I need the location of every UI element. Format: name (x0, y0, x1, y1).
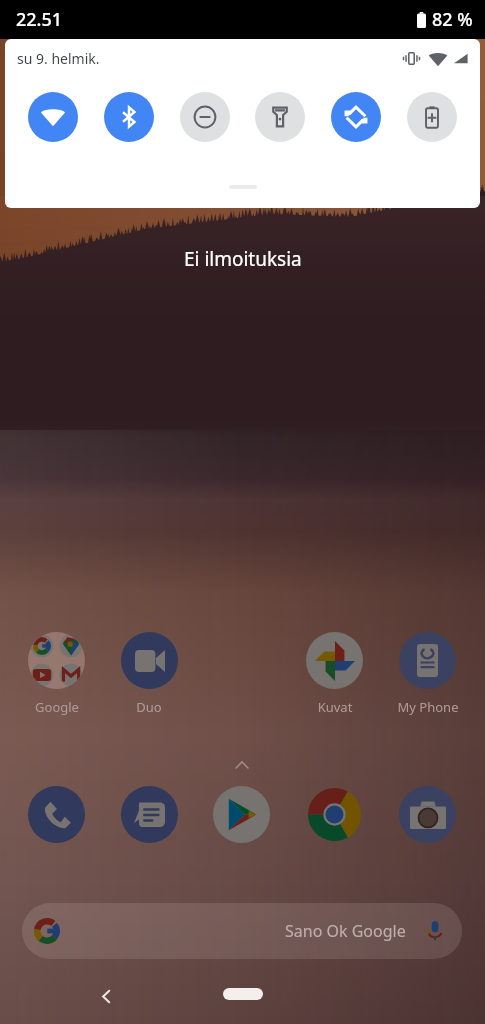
staticText: Sano Ok Google (285, 920, 406, 942)
button[interactable]: Sano Ok Google (22, 903, 462, 959)
button[interactable]: Camera (399, 786, 456, 843)
button[interactable]: Do not disturb (180, 92, 230, 142)
button[interactable]: Back (85, 975, 127, 1017)
button[interactable]: Auto-rotate (331, 92, 381, 142)
staticText: Kuvat (275, 698, 395, 716)
button[interactable]: Messages (121, 786, 178, 843)
staticText: 22.51 (16, 7, 63, 32)
button[interactable]: Kuvat (306, 632, 363, 689)
button[interactable]: Battery saver (407, 92, 457, 142)
button[interactable]: Flashlight (255, 92, 305, 142)
staticText: 82 % (432, 7, 473, 32)
button[interactable]: Play Store (213, 786, 270, 843)
button[interactable]: Wi-Fi (28, 92, 78, 142)
staticText: su 9. helmik. (17, 49, 100, 68)
button[interactable]: Google folder (28, 632, 85, 689)
button[interactable]: Home (223, 988, 263, 1000)
staticText: Duo (89, 698, 209, 716)
staticText: Google (0, 698, 117, 716)
button[interactable]: Bluetooth (104, 92, 154, 142)
button[interactable]: My Phone (399, 632, 456, 689)
staticText: My Phone (368, 698, 485, 716)
button[interactable]: Chrome (306, 786, 363, 843)
button[interactable]: Duo (121, 632, 178, 689)
staticText: Ei ilmoituksia (184, 246, 302, 272)
button[interactable]: Phone (28, 786, 85, 843)
